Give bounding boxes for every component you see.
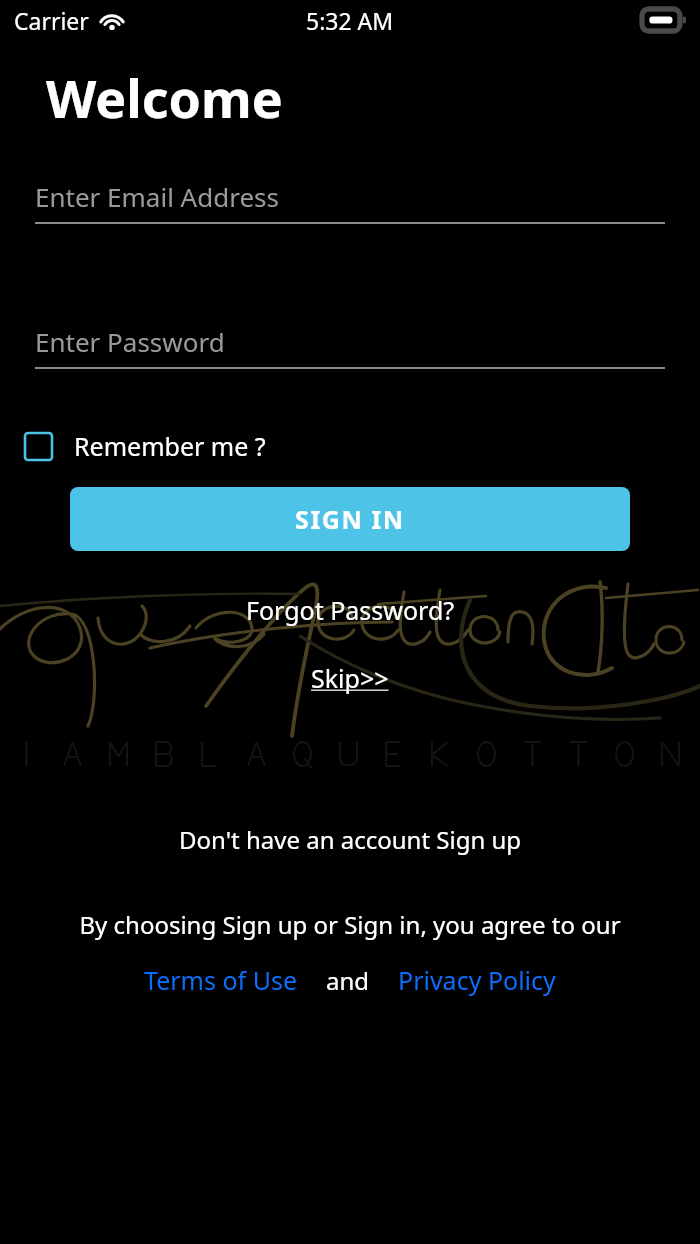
staticText: SIGN IN: [295, 502, 405, 536]
other: Battery full: [642, 9, 686, 31]
staticText: Privacy Policy: [398, 963, 556, 997]
button[interactable]: Enter Password: [35, 324, 665, 369]
button[interactable]: Terms of Use: [144, 963, 298, 997]
staticText: Terms of Use: [144, 963, 298, 997]
button[interactable]: SIGN IN: [70, 487, 630, 551]
button[interactable]: Skip>>: [311, 661, 389, 695]
staticText: Welcome: [46, 62, 283, 133]
other: Wi-Fi signal: [97, 10, 127, 32]
staticText: Carrier: [14, 5, 89, 36]
staticText: and: [326, 964, 370, 997]
staticText: By choosing Sign up or Sign in, you agre…: [0, 908, 700, 941]
button[interactable]: Remember me ?: [25, 429, 266, 463]
staticText: Skip>>: [311, 661, 389, 695]
staticText: Forgot Password?: [246, 593, 455, 627]
staticText: 5:32 AM: [306, 5, 394, 36]
button[interactable]: Enter Email Address: [35, 179, 665, 224]
staticText: Don't have an account Sign up: [179, 823, 522, 856]
staticText: Enter Email Address: [35, 179, 279, 214]
button[interactable]: Don't have an account Sign up: [179, 823, 522, 856]
staticText: Enter Password: [35, 324, 225, 359]
staticText: Remember me ?: [74, 429, 266, 463]
button[interactable]: Forgot Password?: [246, 593, 455, 627]
button[interactable]: Privacy Policy: [398, 963, 556, 997]
